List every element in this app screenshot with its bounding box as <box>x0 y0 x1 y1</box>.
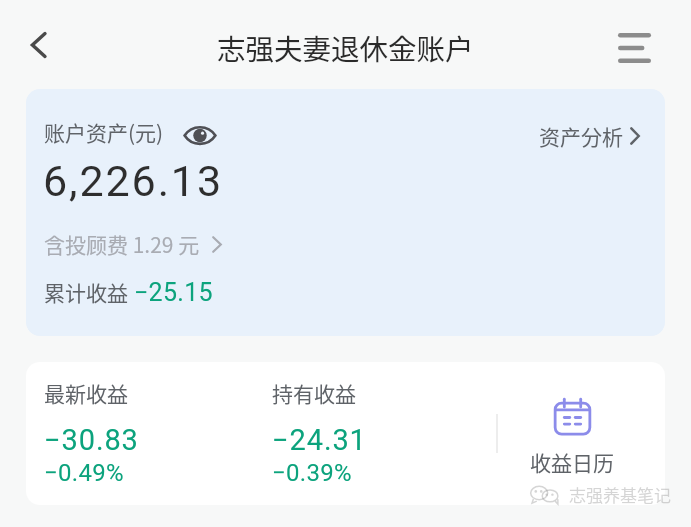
button[interactable]: Toggle balance visibility <box>182 117 218 153</box>
staticText: −24.31 <box>272 423 367 457</box>
button[interactable]: Menu <box>611 25 657 71</box>
staticText: −25.15 <box>134 278 213 307</box>
staticText: 累计收益 <box>44 277 128 307</box>
staticText: 含投顾费 1.29 元 <box>44 229 200 259</box>
button[interactable]: 资产分析 <box>539 121 640 151</box>
staticText: 志强养基笔记 <box>569 482 671 507</box>
staticText: −0.49% <box>44 459 124 487</box>
staticText: −30.83 <box>44 423 139 457</box>
staticText: 资产分析 <box>539 121 623 151</box>
staticText: 收益日历 <box>530 447 614 477</box>
button[interactable]: 收益日历 <box>512 397 632 477</box>
staticText: 持有收益 <box>272 378 356 408</box>
button[interactable]: Back <box>16 22 62 68</box>
staticText: 志强夫妻退休金账户 <box>217 27 474 68</box>
staticText: 账户资产(元) <box>44 117 164 147</box>
button[interactable]: 含投顾费 1.29 元 <box>44 229 222 259</box>
button[interactable]: 持有收益 <box>272 378 367 487</box>
button[interactable]: 最新收益 <box>44 378 139 487</box>
staticText: −0.39% <box>272 459 352 487</box>
staticText: 最新收益 <box>44 378 128 408</box>
staticText: 6,226.13 <box>43 156 223 206</box>
